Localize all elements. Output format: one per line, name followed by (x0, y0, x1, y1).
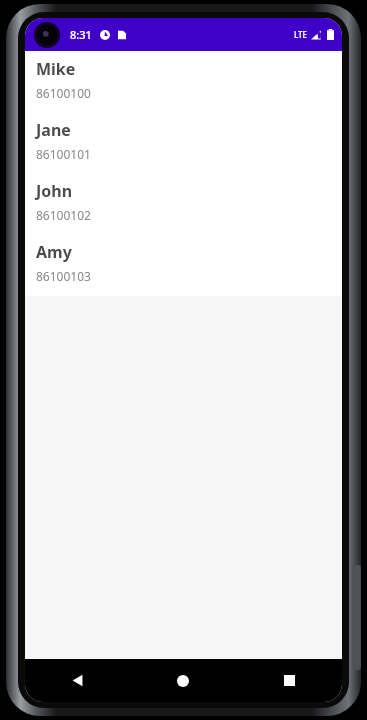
button[interactable]: Amy (25, 234, 342, 295)
staticText: 86100100 (36, 85, 91, 101)
button[interactable]: Jane (25, 112, 342, 173)
staticText: 86100101 (36, 146, 91, 162)
staticText: 86100102 (36, 207, 91, 223)
staticText: Jane (36, 119, 71, 141)
button[interactable]: Back (25, 659, 130, 702)
staticText: Amy (36, 241, 72, 263)
button[interactable]: Mike (25, 51, 342, 112)
button[interactable]: Home (130, 659, 236, 702)
button[interactable]: John (25, 173, 342, 234)
button[interactable]: Recent apps (236, 659, 342, 702)
staticText: 86100103 (36, 268, 91, 284)
staticText: Mike (36, 58, 76, 80)
staticText: 8:31 (70, 27, 92, 42)
staticText: John (36, 180, 73, 202)
staticText: LTE (294, 29, 308, 40)
